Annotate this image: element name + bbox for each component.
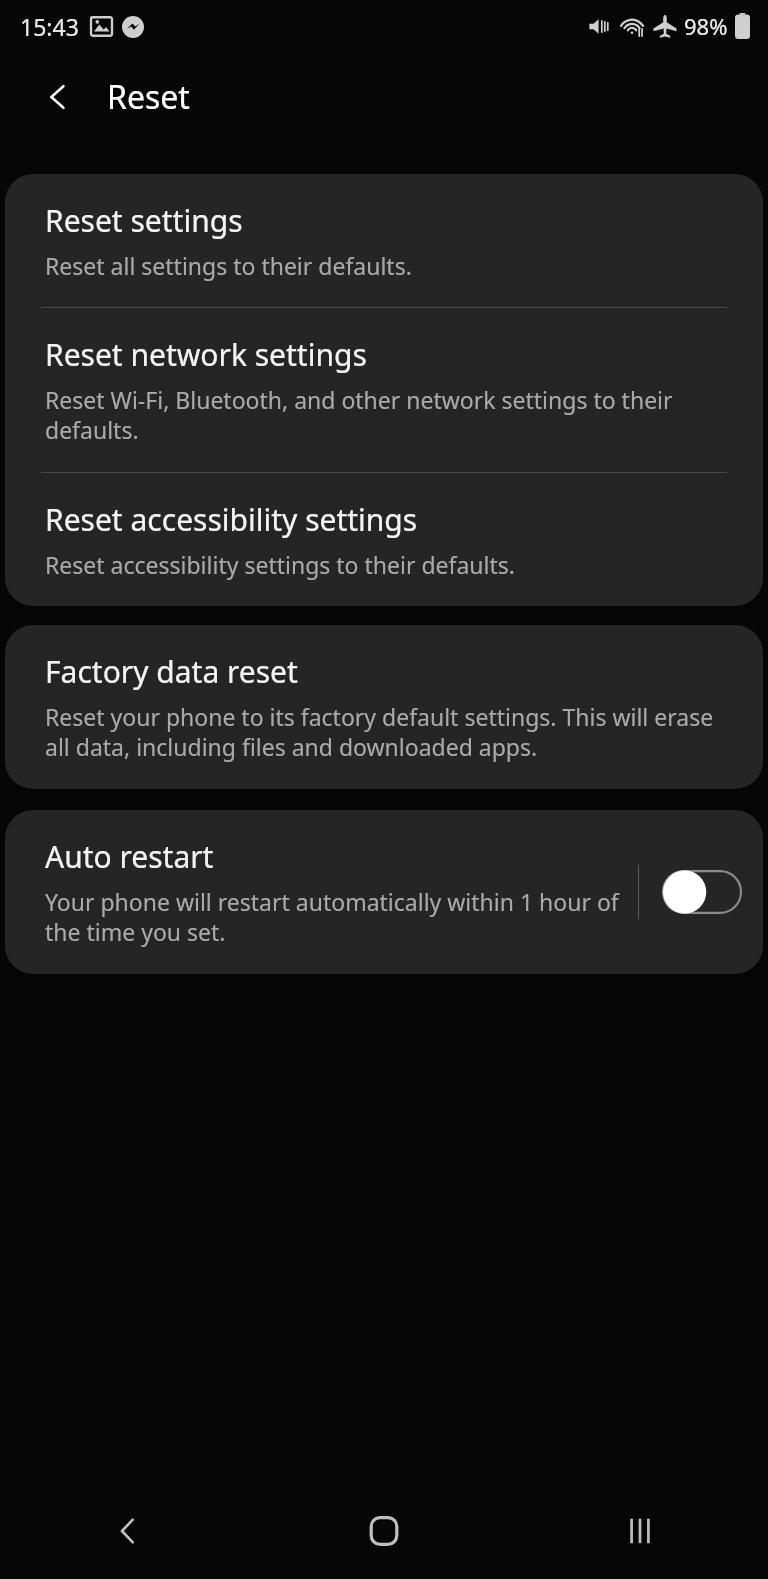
button[interactable]: Reset settings — [5, 174, 763, 307]
button[interactable]: Auto restart toggle — [663, 866, 741, 918]
staticText: Reset settings — [45, 200, 243, 241]
staticText: Your phone will restart automatically wi… — [45, 886, 638, 948]
button[interactable]: Home — [348, 1495, 420, 1567]
button[interactable]: Factory data reset — [5, 625, 763, 789]
button[interactable]: Back — [92, 1495, 164, 1567]
staticText: Factory data reset — [45, 651, 298, 692]
button[interactable]: Auto restart — [5, 810, 763, 974]
staticText: Reset Wi-Fi, Bluetooth, and other networ… — [45, 384, 725, 446]
button[interactable]: Reset accessibility settings — [5, 473, 763, 606]
staticText: 15:43 — [20, 11, 79, 42]
staticText: Reset accessibility settings to their de… — [45, 549, 515, 580]
button[interactable]: Back — [24, 63, 92, 131]
staticText: Auto restart — [45, 836, 214, 877]
staticText: Reset network settings — [45, 334, 367, 375]
staticText: Reset your phone to its factory default … — [45, 701, 725, 763]
button[interactable]: Recent apps — [604, 1495, 676, 1567]
button[interactable]: Reset network settings — [5, 308, 763, 472]
staticText: Reset — [107, 75, 190, 119]
staticText: 98% — [684, 11, 728, 41]
staticText: Reset accessibility settings — [45, 499, 418, 540]
staticText: Reset all settings to their defaults. — [45, 250, 412, 281]
